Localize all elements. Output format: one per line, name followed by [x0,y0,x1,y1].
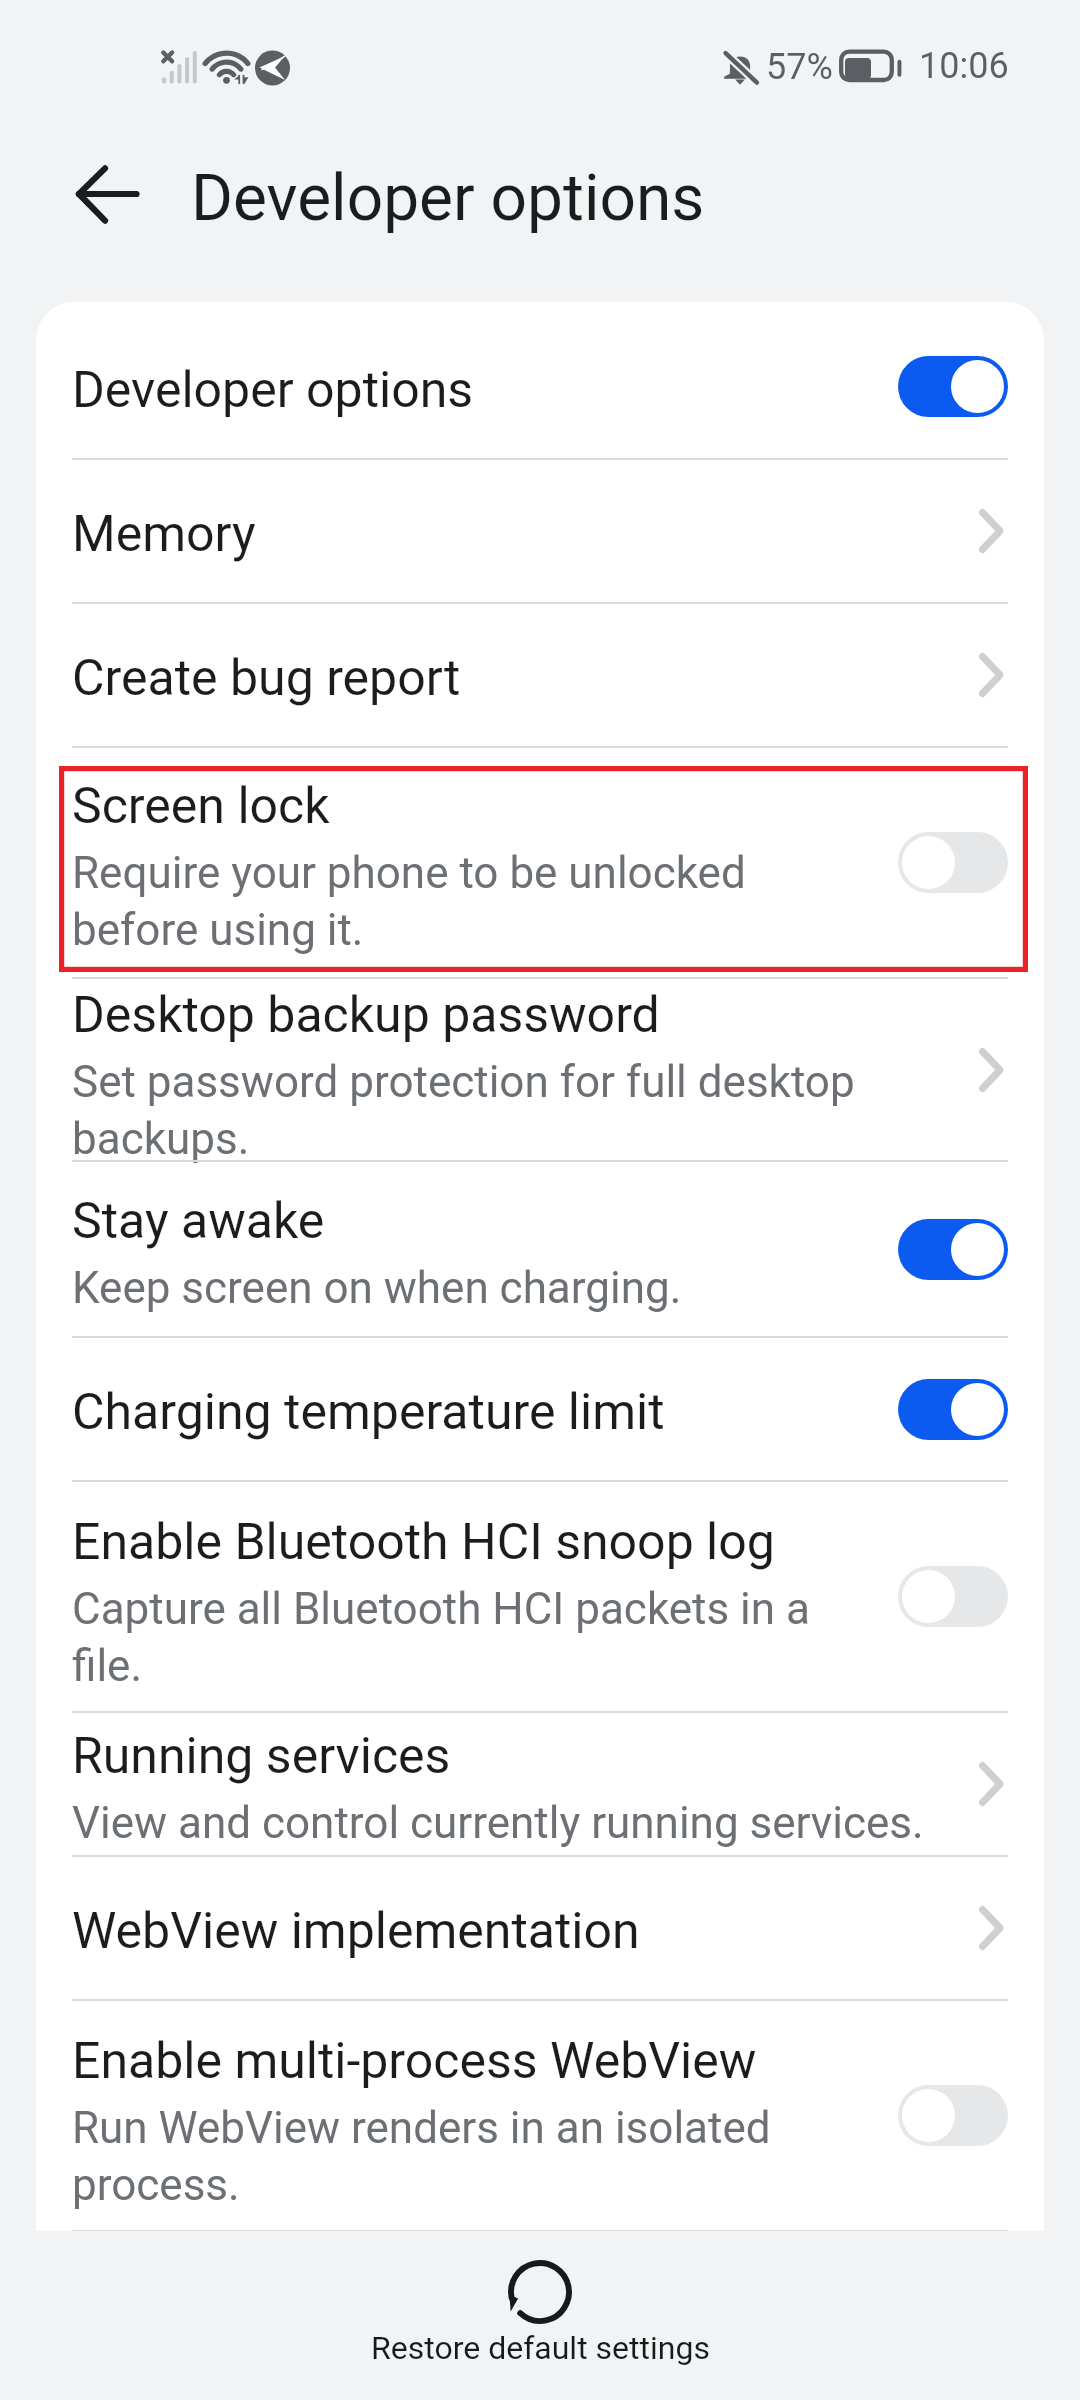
button[interactable]: Switch off [898,1566,1008,1627]
button[interactable]: Memory [36,459,1044,603]
button[interactable]: Create bug report [36,603,1044,747]
button[interactable]: Charging temperature limit [36,1337,1044,1481]
other: Open [952,1900,1008,1956]
button[interactable]: Switch off [898,832,1008,893]
staticText: Charging temperature limit [72,1383,665,1442]
button[interactable]: Stay awake [36,1161,1044,1337]
button[interactable]: Running services [36,1712,1044,1856]
button[interactable]: Desktop backup password [36,978,1044,1161]
button[interactable]: Restore default settings [360,2251,720,2367]
staticText: View and control currently running servi… [72,1797,924,1849]
staticText: Running services [72,1727,451,1786]
other: Open [952,1042,1008,1098]
button[interactable]: Back [58,152,158,236]
staticText: Memory [72,505,256,564]
staticText: Restore default settings [371,2329,710,2367]
staticText: Set password protection for full desktop… [72,1056,902,1165]
staticText: Require your phone to be unlocked before… [72,847,812,956]
button[interactable]: Developer options [36,302,1044,459]
staticText: Create bug report [72,649,461,708]
staticText: Keep screen on when charging. [72,1262,682,1314]
staticText: Enable multi-process WebView [72,2032,757,2091]
staticText: Run WebView renders in an isolated proce… [72,2102,812,2211]
staticText: Stay awake [72,1192,325,1251]
button[interactable]: Enable Bluetooth HCI snoop log [36,1481,1044,1712]
button[interactable]: Switch on [898,1219,1008,1280]
button[interactable]: Screen lock [36,747,1044,978]
other: Open [952,503,1008,559]
staticText: Screen lock [72,777,330,836]
staticText: Enable Bluetooth HCI snoop log [72,1513,775,1572]
other: Open [952,647,1008,703]
button[interactable]: WebView implementation [36,1856,1044,2000]
staticText: 57% [766,46,833,88]
staticText: Developer options [191,161,705,236]
staticText: Capture all Bluetooth HCI packets in a f… [72,1583,812,1692]
button[interactable]: Switch on [898,1379,1008,1440]
staticText: Desktop backup password [72,986,660,1045]
staticText: Developer options [72,361,474,420]
other: Open [952,1756,1008,1812]
staticText: WebView implementation [72,1902,640,1961]
button[interactable]: Enable multi-process WebView [36,2000,1044,2231]
staticText: 10:06 [919,45,1009,87]
button[interactable]: Switch off [898,2085,1008,2146]
button[interactable]: Switch on [898,356,1008,417]
